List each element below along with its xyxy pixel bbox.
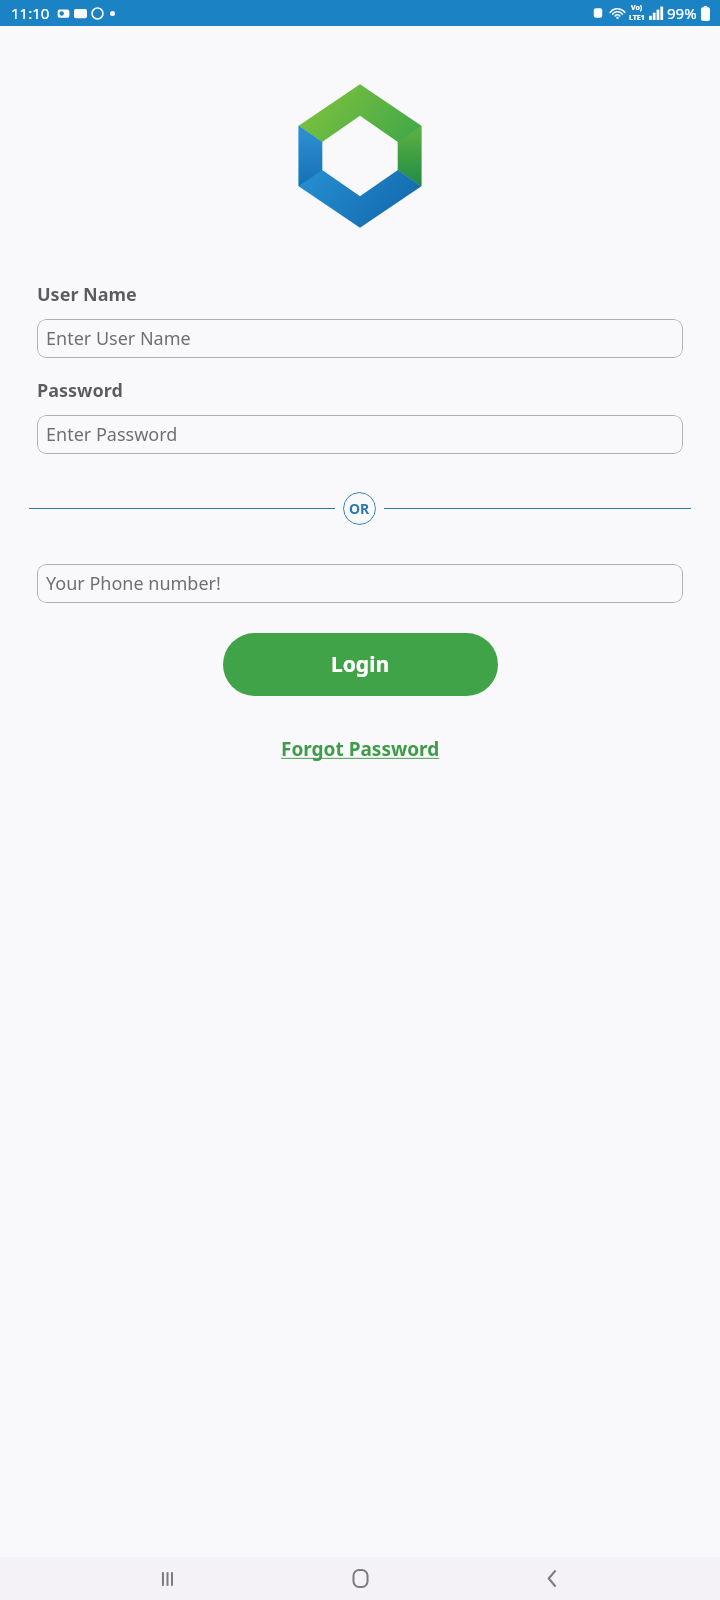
staticText: Enter Password	[46, 422, 178, 447]
button[interactable]: Forgot Password	[271, 732, 450, 766]
staticText: 11:10	[11, 3, 50, 23]
staticText: 99%	[667, 3, 697, 23]
button[interactable]: Home	[336, 1557, 384, 1600]
staticText: LTE1	[629, 13, 645, 23]
button[interactable]: Back	[528, 1557, 576, 1600]
staticText: Password	[37, 378, 123, 403]
staticText: User Name	[37, 282, 137, 307]
staticText: Login	[331, 650, 390, 679]
staticText: Forgot Password	[281, 736, 440, 762]
button[interactable]: Enter User Name	[37, 319, 683, 358]
button[interactable]: Login	[223, 633, 498, 696]
staticText: Vo)	[631, 3, 643, 13]
button[interactable]: OR	[343, 492, 376, 525]
button[interactable]: Recent apps	[144, 1557, 192, 1600]
button[interactable]: Enter Password	[37, 415, 683, 454]
button[interactable]: Your Phone number!	[37, 564, 683, 603]
staticText: Your Phone number!	[46, 571, 221, 596]
staticText: Enter User Name	[46, 326, 191, 351]
staticText: OR	[349, 499, 370, 518]
